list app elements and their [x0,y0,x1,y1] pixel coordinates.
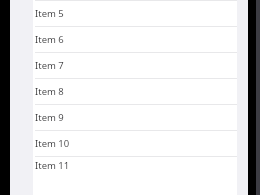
button[interactable]: Item 6 [33,27,237,53]
staticText: Item 7 [35,59,64,72]
button[interactable]: Item 10 [33,131,237,157]
button[interactable]: Item 9 [33,105,237,131]
staticText: Item 6 [35,33,64,46]
staticText: Item 5 [35,7,64,20]
button[interactable]: Item 7 [33,53,237,79]
button[interactable]: Item 11 [33,157,237,173]
staticText: Item 9 [35,111,64,124]
staticText: Item 11 [35,159,70,172]
button[interactable]: Item 5 [33,1,237,27]
button[interactable]: Item 8 [33,79,237,105]
staticText: Item 8 [35,85,64,98]
staticText: Item 10 [35,137,70,150]
